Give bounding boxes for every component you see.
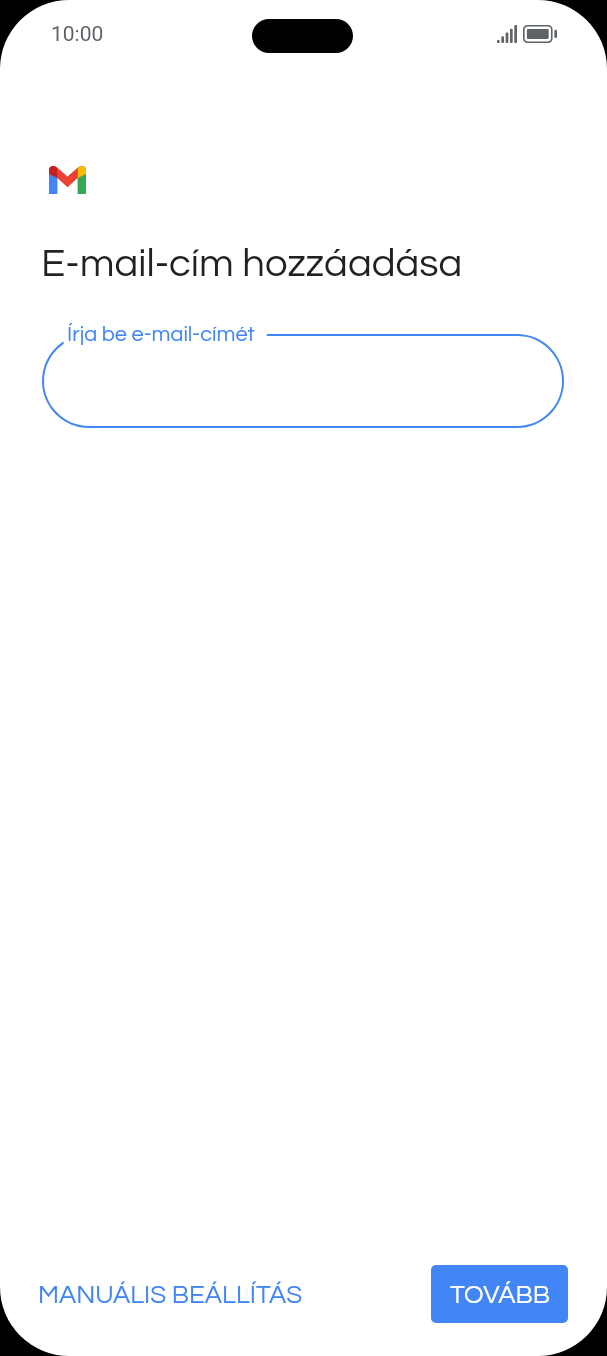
staticText: E-mail-cím hozzáadása bbox=[41, 243, 463, 284]
other: Signal strength bbox=[497, 25, 517, 43]
button[interactable]: Írja be e-mail-címét bbox=[42, 334, 564, 428]
staticText: MANUÁLIS BEÁLLÍTÁS bbox=[38, 1282, 303, 1309]
staticText: 10:00 bbox=[51, 22, 104, 47]
other: Battery bbox=[523, 25, 557, 43]
button[interactable]: TOVÁBB bbox=[431, 1265, 568, 1323]
staticText: Írja be e-mail-címét bbox=[67, 323, 255, 345]
button[interactable]: MANUÁLIS BEÁLLÍTÁS bbox=[24, 1272, 317, 1319]
staticText: TOVÁBB bbox=[450, 1282, 550, 1309]
